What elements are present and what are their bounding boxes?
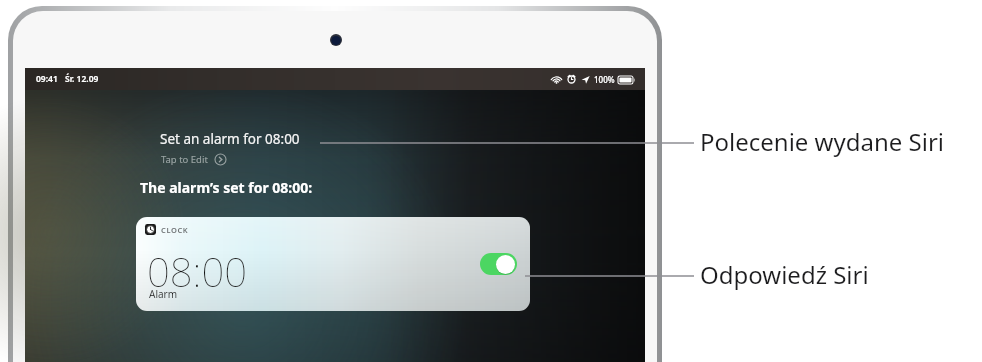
- button[interactable]: Alarm enabled toggle: [480, 253, 517, 275]
- button[interactable]: Polecenie wydane Siri: [700, 125, 945, 158]
- button[interactable]: CLOCK: [136, 217, 530, 311]
- staticText: Śr. 12.09: [65, 73, 99, 85]
- staticText: Odpowiedź Siri: [700, 258, 869, 291]
- staticText: Set an alarm for 08:00: [160, 130, 300, 148]
- button[interactable]: Tap to Edit: [161, 153, 226, 166]
- staticText: Alarm: [149, 287, 178, 301]
- staticText: Tap to Edit: [161, 153, 208, 166]
- staticText: 08:00: [147, 244, 247, 298]
- staticText: CLOCK: [161, 225, 189, 235]
- staticText: The alarm’s set for 08:00:: [140, 178, 313, 197]
- staticText: 09:41: [36, 73, 58, 85]
- staticText: 100%: [594, 74, 615, 85]
- staticText: Polecenie wydane Siri: [700, 125, 945, 158]
- button[interactable]: Odpowiedź Siri: [700, 258, 869, 291]
- button[interactable]: Set an alarm for 08:00: [160, 130, 300, 148]
